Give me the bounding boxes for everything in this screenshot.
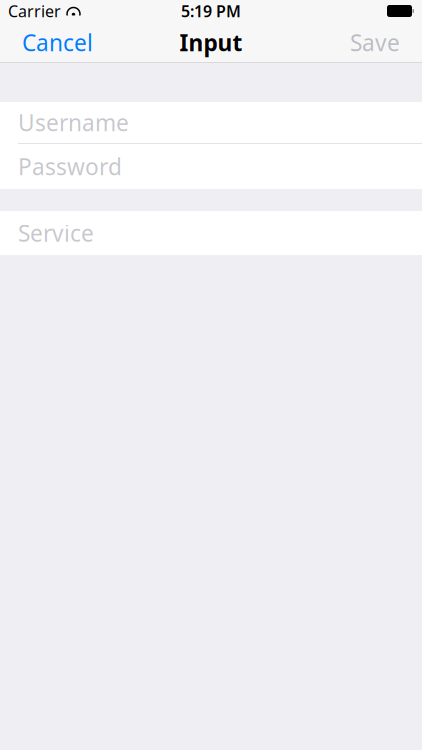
button[interactable]: Save [342,22,408,63]
staticText: Save [350,27,400,57]
staticText: Input [179,27,242,57]
button[interactable]: Password [0,144,422,189]
staticText: Username [18,107,129,137]
staticText: Service [18,218,94,248]
staticText: Carrier [8,0,61,22]
staticText: 5:19 PM [181,0,241,22]
staticText: Cancel [22,27,93,57]
button[interactable]: Cancel [14,22,101,63]
staticText: Password [18,151,122,181]
button[interactable]: Service [0,211,422,255]
button[interactable]: Username [0,102,422,143]
